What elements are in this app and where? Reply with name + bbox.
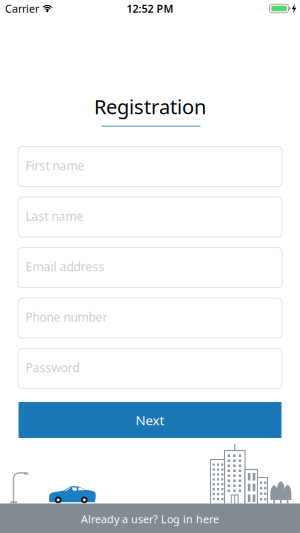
button[interactable]: Last name bbox=[18, 197, 282, 237]
button[interactable]: Already a user? Log in here bbox=[0, 503, 300, 533]
button[interactable]: Email address bbox=[18, 247, 282, 287]
staticText: Carrier bbox=[5, 1, 39, 16]
staticText: Already a user? Log in here bbox=[81, 512, 219, 526]
staticText: Password bbox=[25, 359, 79, 375]
button[interactable]: Password bbox=[18, 348, 282, 388]
staticText: Registration bbox=[94, 93, 206, 120]
button[interactable]: First name bbox=[18, 146, 282, 186]
staticText: Email address bbox=[25, 258, 104, 274]
button[interactable]: Next bbox=[18, 402, 281, 438]
staticText: First name bbox=[25, 157, 84, 173]
button[interactable]: Phone number bbox=[18, 298, 282, 338]
staticText: 12:52 PM bbox=[126, 1, 173, 16]
staticText: Last name bbox=[25, 208, 83, 224]
staticText: Phone number bbox=[25, 309, 107, 325]
staticText: Next bbox=[135, 411, 164, 429]
